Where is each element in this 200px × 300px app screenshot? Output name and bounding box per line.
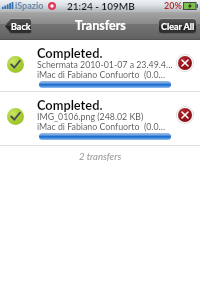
staticText: 2 transfers bbox=[79, 151, 122, 162]
button[interactable]: Completed. bbox=[0, 92, 200, 146]
button[interactable]: Back bbox=[3, 18, 32, 34]
staticText: Schermata 2010-01-07 a 23.49.4… bbox=[37, 59, 173, 70]
staticText: 20% bbox=[164, 0, 182, 11]
staticText: iMac di Fabiano Confuorto (0.0… bbox=[37, 121, 166, 132]
staticText: Back bbox=[11, 21, 31, 32]
staticText: Completed. bbox=[37, 97, 103, 112]
staticText: iSpazio bbox=[15, 0, 44, 11]
button[interactable]: Cancel transfer bbox=[176, 106, 194, 124]
button[interactable]: Clear All bbox=[159, 19, 196, 33]
staticText: Clear All bbox=[161, 21, 195, 32]
staticText: iMac di Fabiano Confuorto (0.0… bbox=[37, 69, 166, 80]
button[interactable]: Completed. bbox=[0, 40, 200, 92]
staticText: Transfers bbox=[75, 18, 126, 33]
staticText: IMG_0106.png (248.02 KB) bbox=[37, 111, 144, 122]
staticText: Completed. bbox=[37, 45, 103, 60]
button[interactable]: Cancel transfer bbox=[176, 54, 194, 72]
staticText: 21:24 - 109MB bbox=[67, 0, 135, 11]
